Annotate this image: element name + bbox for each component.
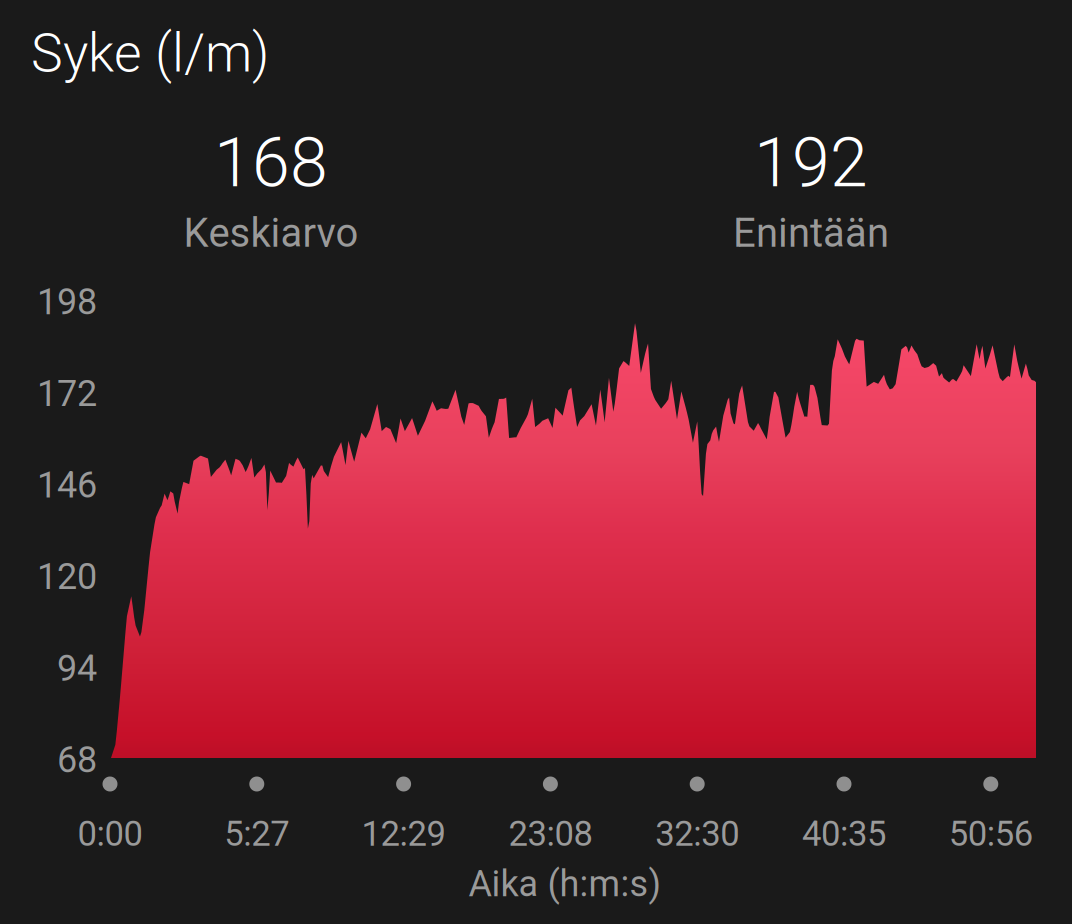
button[interactable]: 168 — [0, 0, 320, 70]
staticText: 12:29 — [362, 814, 446, 854]
staticText: 40:35 — [802, 814, 886, 854]
staticText: 120 — [37, 556, 97, 598]
staticText: 146 — [37, 464, 97, 506]
staticText: 68 — [57, 739, 97, 781]
button[interactable]: Heart rate chart — [0, 0, 1072, 924]
staticText: 168 — [214, 123, 328, 203]
staticText: 50:56 — [949, 814, 1033, 854]
staticText: 32:30 — [655, 814, 739, 854]
staticText: 5:27 — [224, 814, 289, 854]
staticText: 172 — [37, 372, 97, 415]
staticText: Keskiarvo — [183, 210, 358, 256]
staticText: 94 — [57, 647, 97, 689]
staticText: Syke (l/m) — [31, 22, 269, 84]
button[interactable]: 192 — [0, 0, 320, 70]
staticText: 0:00 — [77, 814, 142, 854]
staticText: Enintään — [733, 210, 889, 256]
staticText: 23:08 — [508, 814, 592, 854]
staticText: 198 — [37, 281, 97, 323]
staticText: Aika (h:m:s) — [468, 863, 661, 905]
staticText: 192 — [754, 123, 868, 203]
